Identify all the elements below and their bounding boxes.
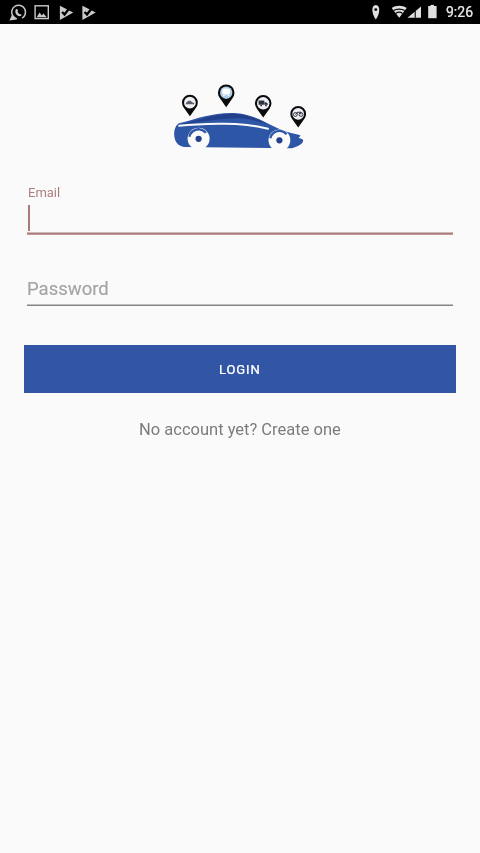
staticText: 9:26 [446,4,473,20]
button[interactable]: LOGIN [24,345,456,393]
staticText: No account yet? Create one [139,420,341,439]
staticText: Password [27,278,109,300]
staticText: LOGIN [219,362,261,377]
staticText: Email [28,185,61,200]
button[interactable]: No account yet? Create one [0,412,480,446]
